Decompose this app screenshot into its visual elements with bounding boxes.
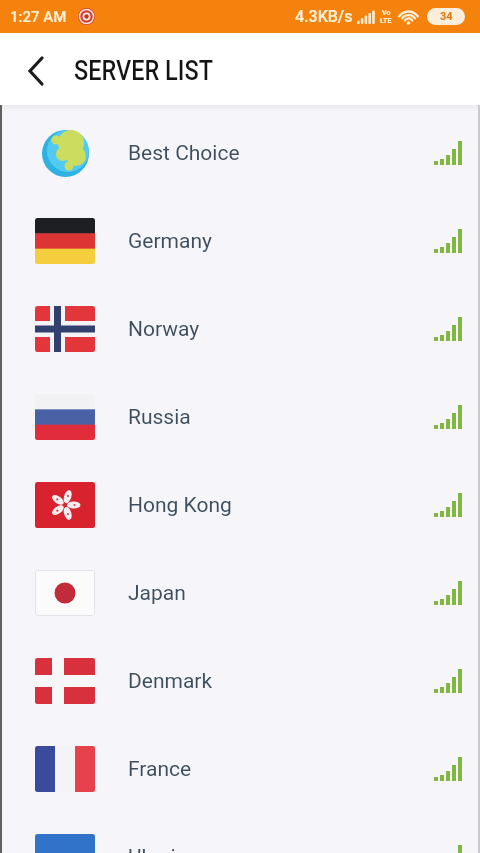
staticText: Japan: [128, 581, 186, 606]
staticText: France: [128, 757, 192, 782]
staticText: 1:27 AM: [10, 8, 67, 26]
staticText: Norway: [128, 317, 200, 342]
button[interactable]: Denmark: [0, 637, 480, 725]
button[interactable]: Ukraine: [0, 813, 480, 853]
staticText: 4.3KB/s: [295, 7, 353, 26]
staticText: Ukraine: [128, 845, 199, 853]
staticText: 34: [440, 10, 453, 23]
button[interactable]: Norway: [0, 285, 480, 373]
staticText: Best Choice: [128, 141, 240, 166]
staticText: SERVER LIST: [74, 54, 213, 87]
staticText: Hong Kong: [128, 493, 232, 518]
staticText: Russia: [128, 405, 191, 430]
button[interactable]: Germany: [0, 197, 480, 285]
staticText: Germany: [128, 229, 212, 254]
button[interactable]: Best Choice: [0, 109, 480, 197]
staticText: Denmark: [128, 669, 213, 694]
button[interactable]: [0, 33, 64, 105]
button[interactable]: France: [0, 725, 480, 813]
button[interactable]: Hong Kong: [0, 461, 480, 549]
button[interactable]: Japan: [0, 549, 480, 637]
button[interactable]: Russia: [0, 373, 480, 461]
staticText: LTE: [380, 17, 392, 25]
staticText: Vo: [382, 9, 391, 17]
